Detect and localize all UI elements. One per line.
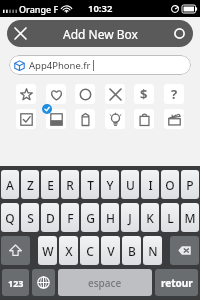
button[interactable]: Circle: [75, 84, 95, 104]
staticText: D: [46, 210, 55, 226]
button[interactable]: H: [101, 203, 119, 232]
button[interactable]: Checklist: [16, 109, 36, 129]
button[interactable]: U: [121, 170, 139, 199]
staticText: Y: [106, 177, 114, 193]
button[interactable]: retour: [155, 269, 198, 296]
button[interactable]: Favorite: [16, 84, 36, 104]
staticText: I: [148, 177, 153, 193]
button[interactable]: Confirm: [166, 20, 193, 47]
button[interactable]: Y: [101, 170, 119, 199]
staticText: H: [106, 210, 115, 226]
staticText: U: [126, 177, 135, 193]
button[interactable]: V: [101, 236, 120, 265]
staticText: ?: [171, 85, 178, 103]
button[interactable]: X: [59, 236, 78, 265]
button[interactable]: C: [80, 236, 99, 265]
button[interactable]: Money: [134, 84, 154, 104]
button[interactable]: W: [38, 236, 57, 265]
button[interactable]: S: [21, 203, 39, 232]
button[interactable]: Shopping: [134, 109, 154, 129]
button[interactable]: Like: [46, 84, 66, 104]
button[interactable]: Backspace: [170, 236, 199, 265]
staticText: Q: [5, 210, 15, 226]
staticText: 10:32: [88, 2, 113, 15]
staticText: S: [27, 210, 34, 226]
button[interactable]: Z: [21, 170, 39, 199]
staticText: espace: [88, 276, 122, 290]
button[interactable]: L: [161, 203, 179, 232]
button[interactable]: J: [121, 203, 139, 232]
staticText: A: [6, 177, 14, 193]
button[interactable]: T: [81, 170, 99, 199]
button[interactable]: P: [181, 170, 199, 199]
staticText: G: [86, 210, 95, 226]
button[interactable]: Shift: [1, 236, 30, 265]
button[interactable]: 123: [2, 269, 29, 296]
button[interactable]: espace: [58, 269, 152, 296]
button[interactable]: K: [141, 203, 159, 232]
staticText: App4Phone.fr: [29, 59, 91, 72]
button[interactable]: B: [122, 236, 141, 265]
staticText: Orange F: [19, 3, 59, 15]
staticText: J: [128, 210, 132, 226]
button[interactable]: Globe: [32, 269, 55, 296]
button[interactable]: O: [161, 170, 179, 199]
staticText: $: [140, 85, 148, 103]
button[interactable]: App4Phone.fr: [9, 55, 191, 75]
staticText: F: [67, 210, 74, 226]
staticText: B: [128, 243, 136, 259]
button[interactable]: Notes: [46, 109, 66, 129]
button[interactable]: Close: [105, 84, 125, 104]
button[interactable]: Pen: [75, 109, 95, 129]
button[interactable]: R: [61, 170, 79, 199]
staticText: L: [167, 210, 174, 226]
staticText: K: [146, 210, 154, 226]
button[interactable]: G: [81, 203, 99, 232]
staticText: P: [186, 177, 194, 193]
staticText: E: [47, 177, 54, 193]
staticText: Add New Box: [63, 26, 138, 42]
staticText: X: [65, 243, 73, 259]
staticText: 123: [8, 277, 24, 289]
staticText: M: [184, 210, 196, 226]
button[interactable]: Video: [164, 109, 184, 129]
button[interactable]: A: [1, 170, 19, 199]
button[interactable]: E: [41, 170, 59, 199]
button[interactable]: N: [143, 236, 162, 265]
staticText: W: [42, 243, 54, 259]
staticText: retour: [161, 276, 193, 290]
button[interactable]: Idea: [105, 109, 125, 129]
staticText: C: [86, 243, 94, 259]
button[interactable]: D: [41, 203, 59, 232]
staticText: R: [66, 177, 74, 193]
staticText: T: [87, 177, 94, 193]
button[interactable]: M: [181, 203, 199, 232]
staticText: Z: [27, 177, 34, 193]
button[interactable]: F: [61, 203, 79, 232]
button[interactable]: Close: [7, 20, 34, 47]
button[interactable]: Q: [1, 203, 19, 232]
button[interactable]: Help: [164, 84, 184, 104]
staticText: V: [107, 243, 115, 259]
staticText: O: [165, 177, 175, 193]
staticText: N: [148, 243, 158, 259]
button[interactable]: I: [141, 170, 159, 199]
